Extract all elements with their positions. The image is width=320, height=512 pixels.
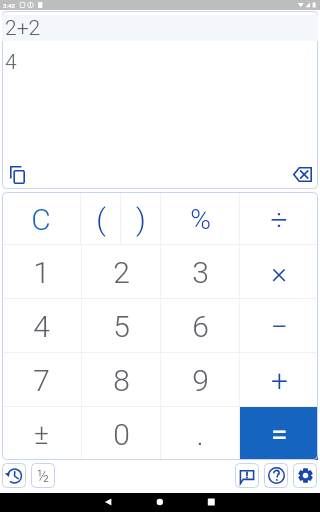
staticText: ( — [96, 202, 106, 237]
staticText: 9 — [192, 363, 209, 398]
staticText: = — [271, 417, 288, 452]
staticText: 4 — [5, 50, 17, 75]
staticText: 7 — [33, 363, 50, 398]
staticText: 0 — [113, 417, 130, 452]
button[interactable]: % — [161, 192, 239, 244]
staticText: . — [196, 417, 204, 452]
staticText: 4 — [33, 309, 50, 344]
button[interactable]: 6 — [161, 299, 239, 352]
button[interactable]: 2 — [82, 245, 160, 298]
button[interactable]: 1 — [2, 245, 81, 298]
staticText: C — [31, 202, 51, 237]
button[interactable]: C — [2, 192, 80, 244]
button[interactable]: 9 — [161, 353, 239, 406]
staticText: 1 — [33, 255, 50, 290]
button[interactable]: + — [240, 353, 318, 406]
button[interactable]: 0 — [82, 407, 160, 460]
button[interactable]: ) — [121, 192, 160, 244]
button[interactable]: ± — [2, 407, 81, 460]
button[interactable]: 7 — [2, 353, 81, 406]
staticText: 3:42 — [3, 2, 15, 9]
staticText: % — [190, 203, 211, 236]
button[interactable]: × — [240, 245, 318, 298]
button[interactable]: . — [161, 407, 239, 460]
staticText: ½ — [37, 467, 50, 486]
button[interactable]: 4 — [2, 299, 81, 352]
staticText: 8 — [113, 363, 130, 398]
staticText: ÷ — [270, 202, 288, 237]
button[interactable]: Help — [264, 463, 288, 488]
button[interactable]: ( — [81, 192, 120, 244]
staticText: 2+2 — [5, 16, 41, 41]
staticText: ) — [136, 202, 146, 237]
button[interactable]: Settings — [293, 463, 317, 488]
button[interactable]: − — [240, 299, 318, 352]
button[interactable]: 3 — [161, 245, 239, 298]
staticText: 6 — [192, 309, 209, 344]
button[interactable]: = — [240, 407, 318, 460]
button[interactable]: History — [2, 463, 26, 488]
staticText: ± — [34, 418, 49, 451]
button[interactable]: Backspace — [291, 163, 314, 186]
button[interactable]: ÷ — [240, 192, 318, 244]
staticText: − — [270, 309, 288, 344]
button[interactable]: Fraction — [31, 463, 55, 488]
button[interactable]: Send feedback — [235, 463, 259, 488]
staticText: 2 — [113, 255, 130, 290]
button[interactable]: 8 — [82, 353, 160, 406]
staticText: 3 — [192, 255, 209, 290]
button[interactable]: Copy — [6, 163, 29, 186]
button[interactable]: 5 — [82, 299, 160, 352]
staticText: × — [271, 255, 287, 290]
staticText: 5 — [113, 309, 130, 344]
staticText: + — [271, 363, 288, 398]
